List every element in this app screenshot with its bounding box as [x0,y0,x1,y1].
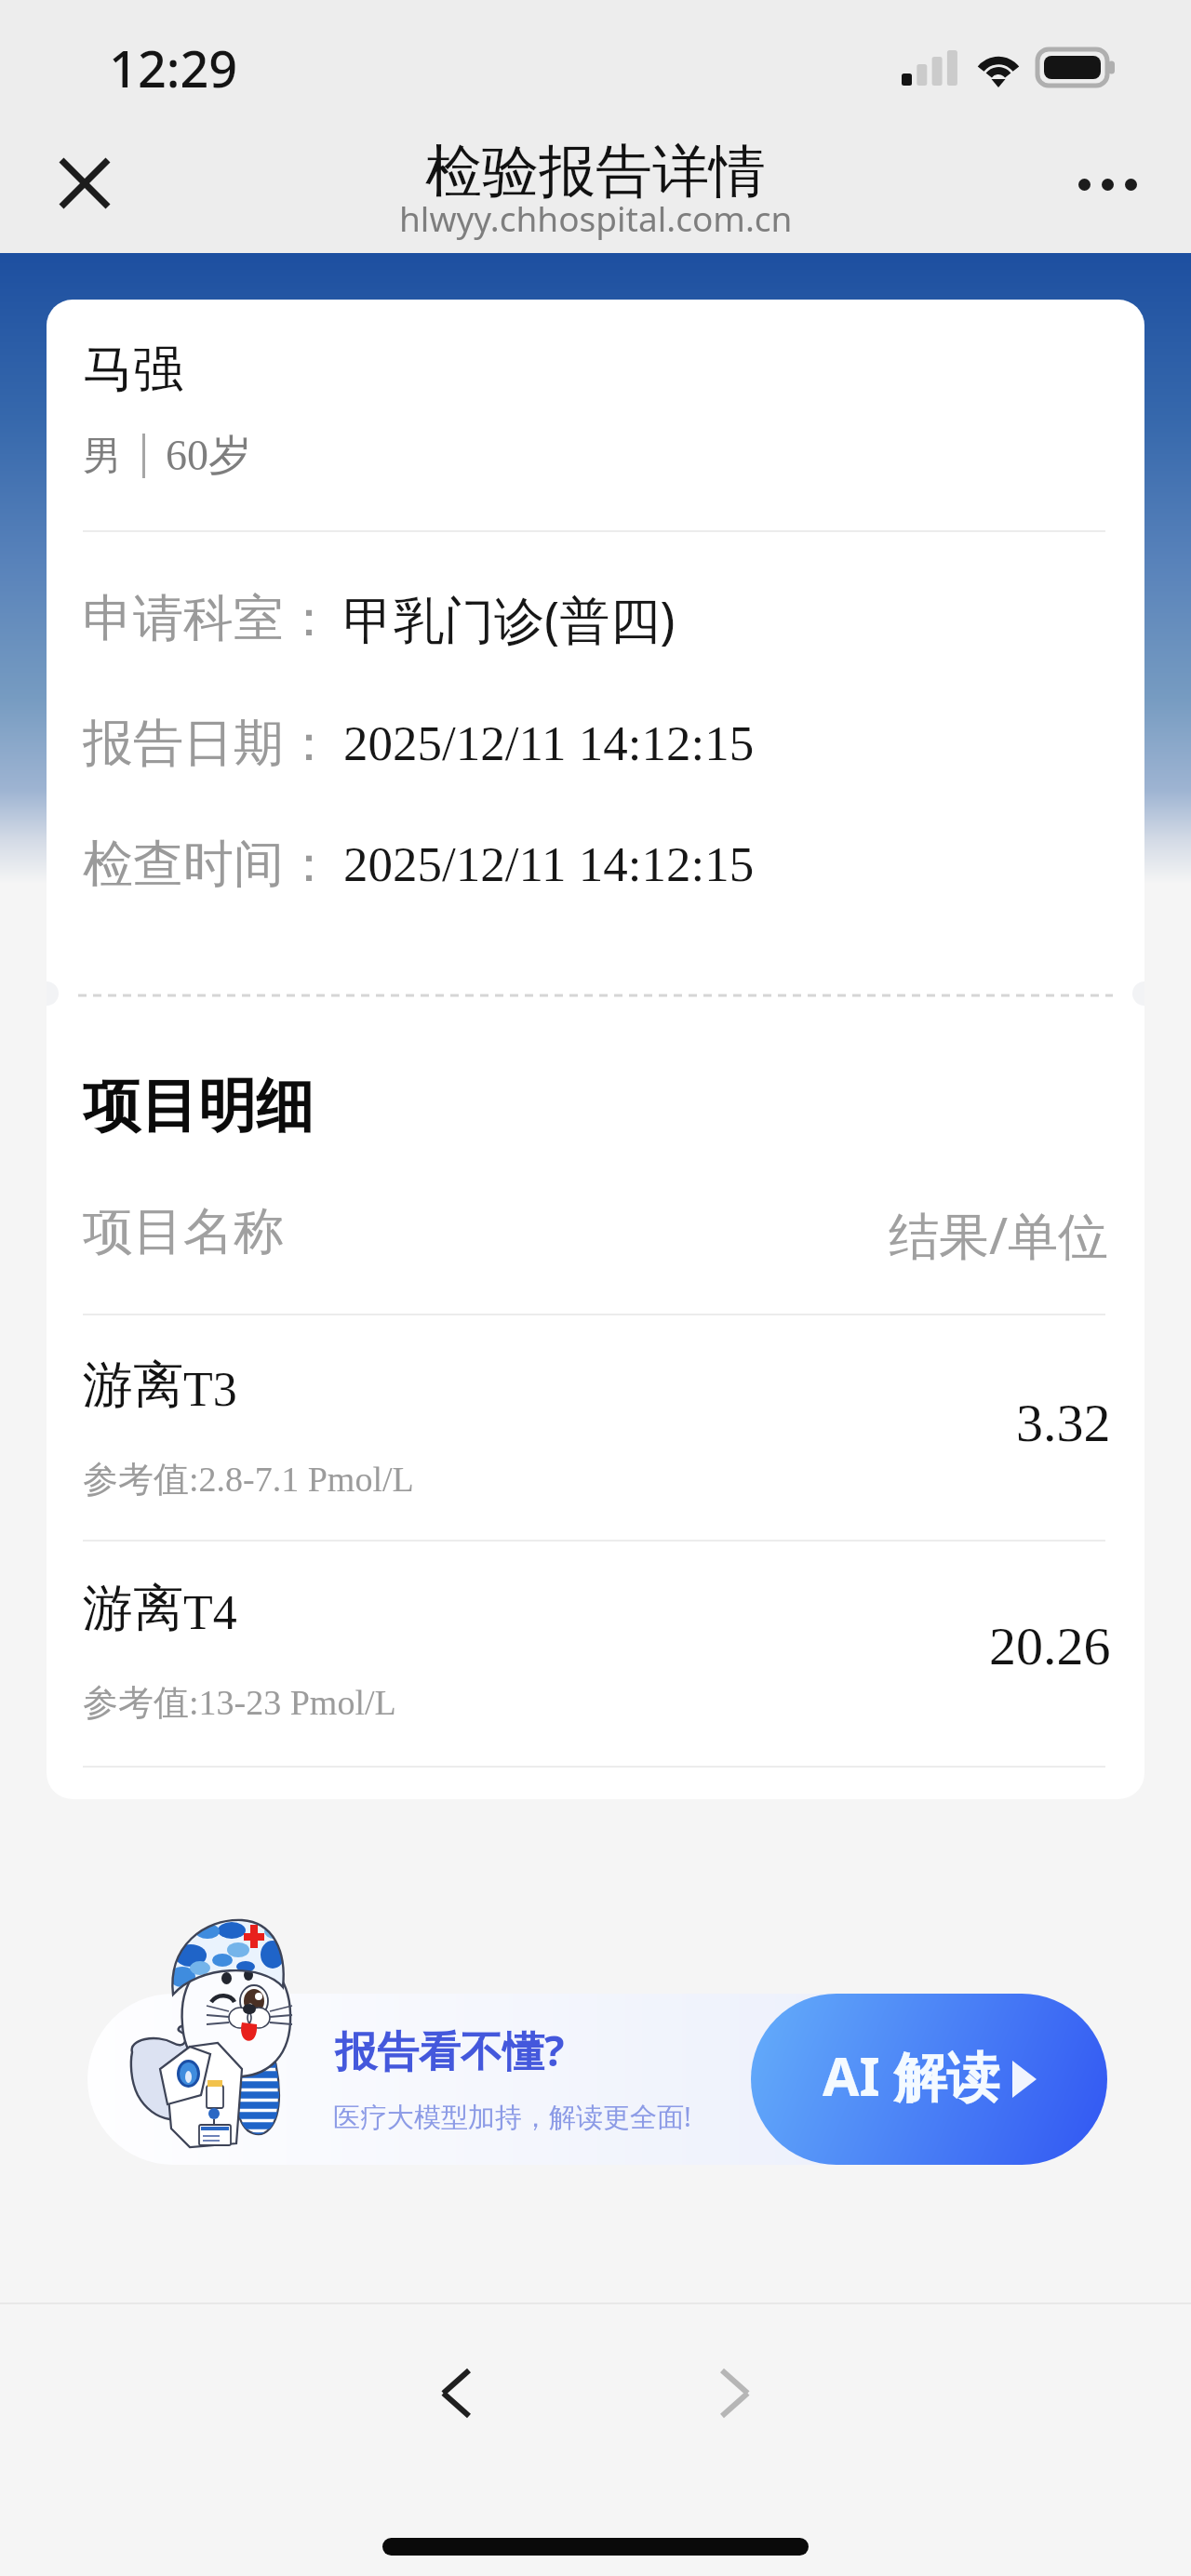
staticText: 医疗大模型加持，解读更全面! [333,2098,691,2135]
button[interactable]: 报告看不懂? [87,1994,1107,2165]
staticText: 2025/12/11 14:12:15 [343,716,755,771]
staticText: 甲乳门诊(普四) [343,584,676,653]
button[interactable]: Close [45,121,164,253]
staticText: 20.26 [989,1616,1111,1675]
staticText: 3.32 [1016,1393,1111,1452]
staticText: 检查时间： [83,833,334,896]
staticText: 60岁 [166,429,251,483]
staticText: T4 [183,1586,237,1640]
staticText: 结果/单位 [889,1200,1109,1269]
staticText: 项目名称 [83,1200,284,1263]
staticText: AI 解读 [823,2039,1000,2112]
staticText: 报告看不懂? [335,2022,565,2078]
button[interactable]: Forward [684,2342,786,2444]
staticText: 游离 [83,1577,183,1640]
staticText: 男 [83,432,122,481]
staticText: 检验报告详情 [425,136,766,207]
button[interactable]: Back [404,2342,506,2444]
staticText: hlwyy.chhospital.com.cn [399,194,793,241]
staticText: 报告日期： [83,712,334,775]
button[interactable]: AI 解读 [751,1994,1107,2165]
button[interactable]: More options [1056,152,1158,217]
staticText: 游离 [83,1354,183,1417]
staticText: 申请科室： [83,587,334,650]
staticText: 2025/12/11 14:12:15 [343,837,755,892]
staticText: 马强 [83,338,183,401]
staticText: 参考值:13-23 Pmol/L [83,1680,396,1725]
staticText: 项目明细 [83,1070,314,1142]
staticText: 12:29 [109,33,238,102]
staticText: 参考值:2.8-7.1 Pmol/L [83,1457,414,1502]
staticText: T3 [183,1363,237,1417]
